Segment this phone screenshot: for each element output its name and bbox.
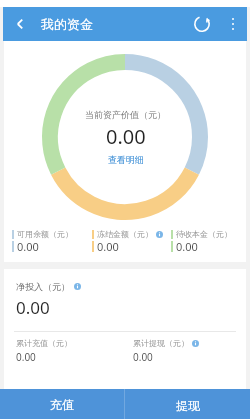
staticText: 当前资产价值（元） xyxy=(85,109,166,120)
button[interactable]: Refresh xyxy=(185,7,219,41)
button[interactable]: More options xyxy=(219,10,247,38)
staticText: 累计提现（元） xyxy=(133,338,189,348)
staticText: 0.00 xyxy=(16,350,36,364)
staticText: 可用余额（元） xyxy=(17,229,73,239)
staticText: 冻结金额（元） xyxy=(97,229,153,239)
staticText: 待收本金（元） xyxy=(176,229,232,239)
button[interactable]: 查看明细 xyxy=(104,153,148,166)
staticText: 0.00 xyxy=(106,123,146,150)
button[interactable]: 提现 xyxy=(125,389,250,419)
button[interactable]: 累计提现（元） xyxy=(125,332,246,364)
staticText: 充值 xyxy=(50,397,74,412)
button[interactable]: 充值 xyxy=(0,389,124,419)
staticText: 净投入（元） xyxy=(16,281,70,292)
staticText: 0.00 xyxy=(176,239,198,254)
staticText: 0.00 xyxy=(133,350,153,364)
staticText: 0.00 xyxy=(16,296,50,319)
staticText: 0.00 xyxy=(17,239,39,254)
staticText: 查看明细 xyxy=(108,154,144,165)
button[interactable]: Back xyxy=(3,7,37,41)
button[interactable]: 待收本金（元） xyxy=(165,229,244,254)
staticText: 累计充值（元） xyxy=(16,338,72,348)
button[interactable]: 冻结金额（元） xyxy=(86,229,165,254)
staticText: 0.00 xyxy=(97,239,119,254)
button[interactable]: 可用余额（元） xyxy=(6,229,86,254)
staticText: 提现 xyxy=(176,398,200,413)
staticText: 我的资金 xyxy=(41,16,93,32)
button[interactable]: 累计充值（元） xyxy=(4,332,125,364)
button[interactable]: 净投入（元） xyxy=(4,269,246,331)
